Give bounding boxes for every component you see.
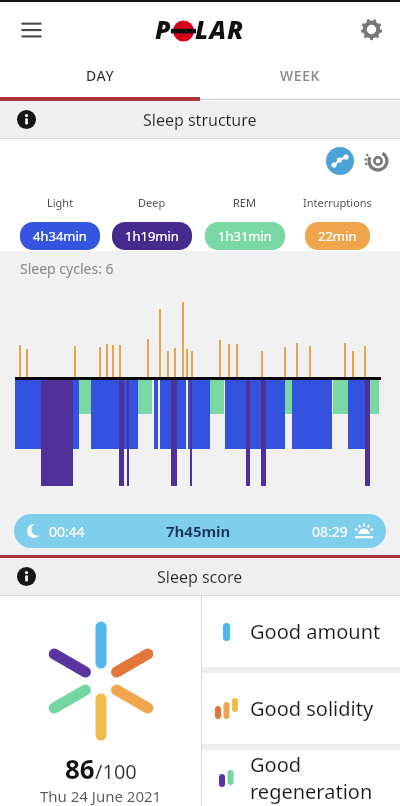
staticText: REM — [233, 195, 256, 210]
button[interactable] — [326, 147, 354, 175]
staticText: Good solidity — [250, 695, 374, 722]
button[interactable]: 4h34min — [20, 222, 100, 250]
button[interactable]: 1h19min — [112, 222, 192, 250]
staticText: Thu 24 June 2021 — [40, 786, 162, 806]
staticText: 1h31min — [218, 227, 272, 245]
button[interactable]: 00:44 — [14, 514, 386, 548]
button[interactable] — [356, 14, 386, 44]
staticText: 4h34min — [33, 227, 87, 245]
button[interactable] — [17, 567, 36, 586]
button[interactable]: 22min — [305, 222, 370, 250]
button[interactable]: Good regeneration — [202, 750, 400, 806]
button[interactable]: DAY — [0, 56, 200, 101]
button[interactable] — [17, 110, 36, 129]
button[interactable] — [16, 14, 46, 44]
staticText: 1h19min — [125, 227, 179, 245]
staticText: Sleep cycles: 6 — [20, 259, 114, 278]
staticText: LAR — [195, 12, 245, 46]
staticText: /100 — [95, 758, 137, 785]
staticText: Light — [47, 195, 74, 210]
button[interactable] — [364, 148, 390, 174]
staticText: 08:29 — [312, 522, 348, 541]
staticText: P — [155, 12, 172, 46]
staticText: Sleep score — [157, 566, 243, 588]
staticText: Sleep structure — [143, 109, 257, 131]
staticText: Deep — [138, 195, 166, 210]
staticText: 86 — [65, 751, 95, 786]
staticText: Interruptions — [303, 195, 372, 210]
button[interactable]: Good solidity — [202, 673, 400, 744]
staticText: Good regeneration — [250, 751, 373, 805]
staticText: 00:44 — [49, 522, 85, 541]
staticText: 22min — [318, 227, 357, 245]
staticText: 7h45min — [166, 521, 231, 541]
button[interactable]: Good amount — [202, 596, 400, 667]
staticText: WEEK — [280, 66, 321, 85]
staticText: DAY — [86, 66, 115, 85]
staticText: Good amount — [250, 618, 381, 645]
button[interactable]: 1h31min — [205, 222, 285, 250]
button[interactable]: WEEK — [200, 56, 400, 101]
